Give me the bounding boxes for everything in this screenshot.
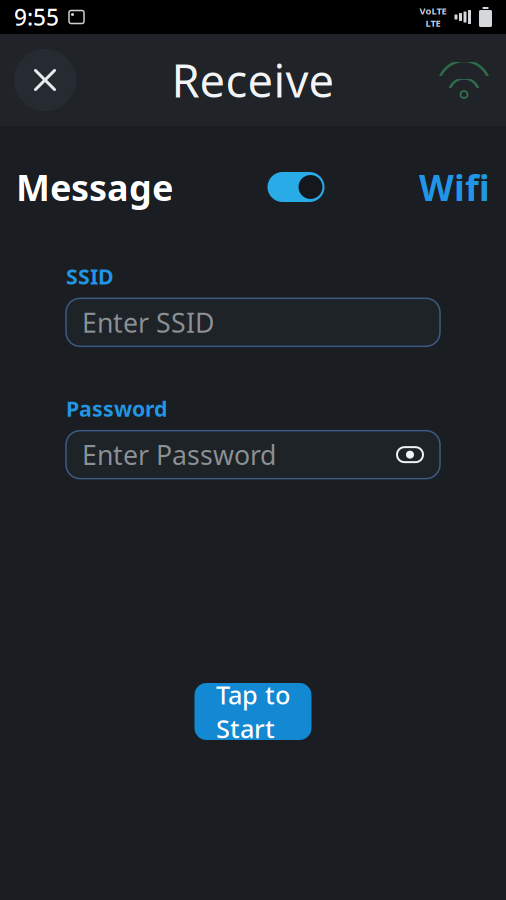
button[interactable]: Wi-Fi status [436, 57, 492, 103]
button[interactable]: Enter Password [66, 431, 440, 479]
staticText: SSID [66, 262, 114, 290]
button[interactable]: Enter SSID [66, 298, 440, 346]
button[interactable]: Close [14, 49, 76, 111]
staticText: VoLTE [419, 5, 446, 17]
staticText: Enter Password [82, 437, 276, 472]
button[interactable]: Mode toggle [267, 172, 324, 202]
staticText: Password [66, 394, 167, 423]
staticText: Message [16, 163, 173, 211]
staticText: 9:55 [14, 2, 59, 32]
staticText: Receive [171, 50, 334, 110]
staticText: Wifi [419, 163, 490, 211]
staticText: LTE [425, 17, 440, 29]
button[interactable]: Wifi [419, 163, 490, 211]
staticText: Tap to Start [216, 678, 290, 745]
button[interactable]: Tap to Start [194, 683, 311, 740]
staticText: Enter SSID [82, 305, 214, 340]
